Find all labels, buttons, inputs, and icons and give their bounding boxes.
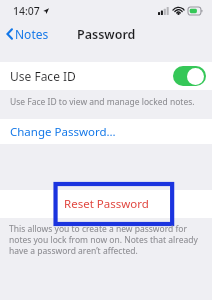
staticText: Use Face ID xyxy=(10,68,76,84)
button[interactable]: Use Face ID xyxy=(0,62,212,90)
staticText: Reset Password xyxy=(64,196,149,212)
staticText: Notes xyxy=(15,26,49,42)
staticText: Use Face ID to view and manage locked no… xyxy=(10,96,195,108)
staticText: Password xyxy=(77,26,136,43)
button[interactable]: Reset Password xyxy=(0,190,212,218)
staticText: Change Password… xyxy=(10,124,116,140)
button[interactable]: Use Face ID toggle, on xyxy=(173,66,206,86)
button[interactable]: Change Password… xyxy=(0,119,212,144)
staticText: This allows you to create a new password… xyxy=(9,223,200,256)
staticText: 14:07 xyxy=(13,4,40,18)
button[interactable]: Notes xyxy=(0,23,57,45)
